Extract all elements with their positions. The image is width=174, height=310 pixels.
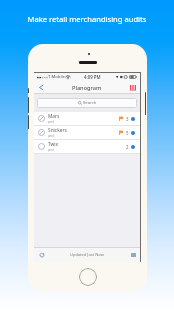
button[interactable]: Planogram view: [129, 84, 137, 92]
staticText: Search: [83, 100, 97, 106]
button[interactable]: Mars: [34, 112, 140, 125]
button[interactable]: Snickers: [34, 126, 140, 139]
staticText: Make retail merchandising audits: [0, 14, 174, 24]
staticText: 5: [126, 130, 129, 136]
staticText: Twix: [48, 141, 59, 148]
button[interactable]: Options: [131, 253, 136, 257]
staticText: 2: [126, 144, 129, 150]
staticText: Mars: [48, 113, 60, 120]
staticText: Planogram: [72, 84, 102, 92]
staticText: Snickers: [48, 127, 67, 134]
button[interactable]: Back: [35, 82, 46, 93]
staticText: 3: [126, 116, 129, 122]
staticText: prod: [48, 134, 54, 138]
staticText: Updated Just Now: [70, 252, 104, 257]
staticText: prod: [48, 120, 54, 124]
staticText: prod: [48, 148, 54, 152]
button[interactable]: Search: [37, 98, 137, 108]
staticText: 4:09 PM: [84, 74, 101, 80]
button[interactable]: Refresh: [37, 250, 46, 259]
staticText: T-Mobile: [48, 74, 65, 80]
button[interactable]: Twix: [34, 140, 140, 153]
